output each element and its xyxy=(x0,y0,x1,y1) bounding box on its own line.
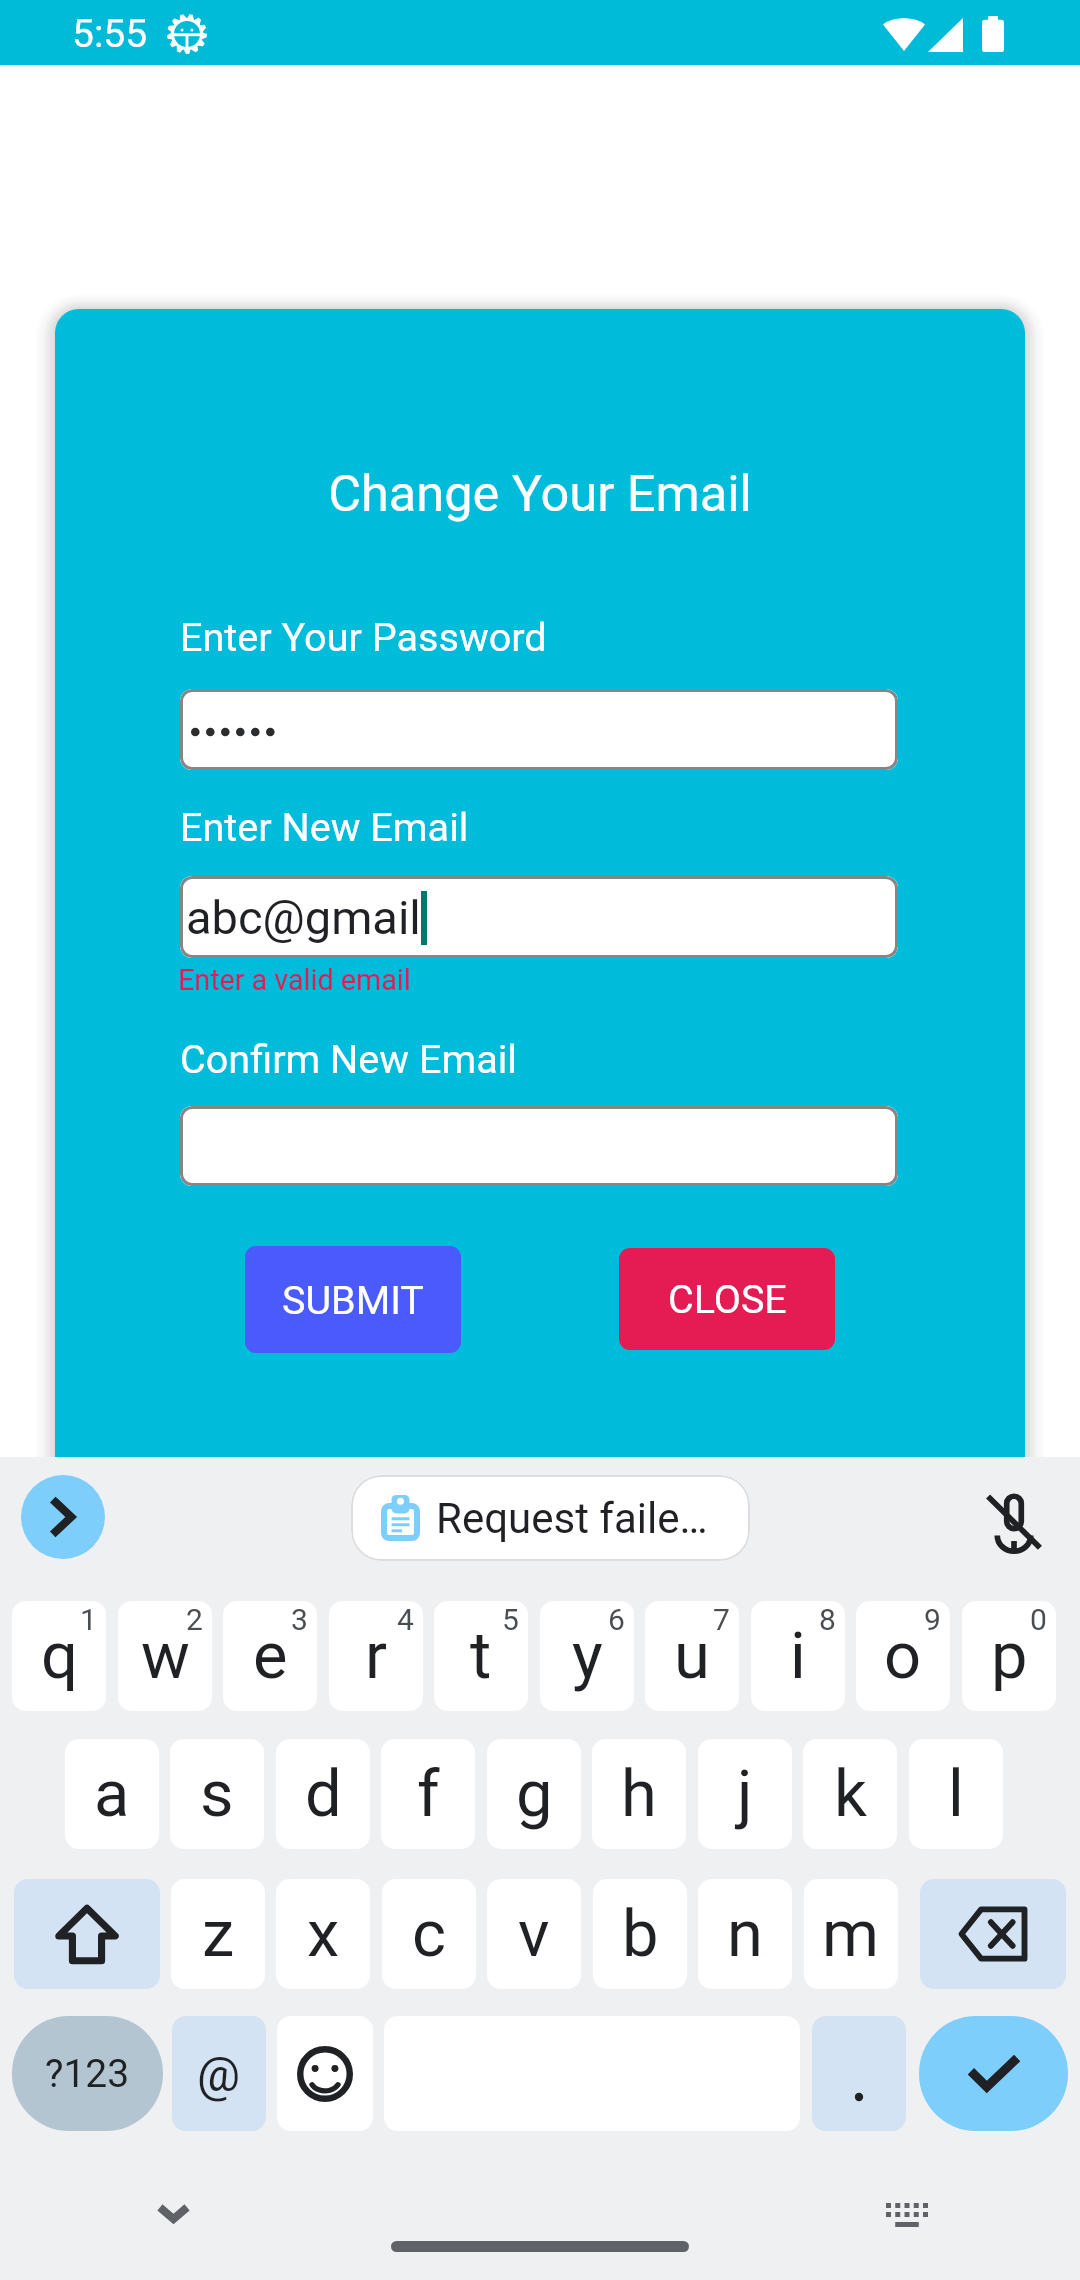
button[interactable]: x xyxy=(276,1879,370,1989)
button[interactable]: o xyxy=(856,1601,950,1711)
button[interactable]: Symbols xyxy=(12,2016,163,2131)
staticText: Confirm New Email xyxy=(180,1036,517,1082)
button[interactable]: s xyxy=(170,1739,264,1849)
button[interactable]: Backspace xyxy=(920,1879,1066,1989)
staticText: Enter Your Password xyxy=(180,614,547,660)
staticText: f xyxy=(417,1756,440,1832)
staticText: i xyxy=(790,1618,806,1694)
staticText: 2 xyxy=(186,1602,203,1637)
staticText: l xyxy=(948,1756,964,1832)
staticText: m xyxy=(822,1896,880,1972)
staticText: n xyxy=(727,1896,763,1972)
staticText: g xyxy=(516,1756,553,1832)
staticText: 9 xyxy=(924,1602,941,1637)
button[interactable]: d xyxy=(276,1739,370,1849)
staticText: 0 xyxy=(1030,1602,1047,1637)
staticText: u xyxy=(674,1618,710,1694)
button[interactable]: m xyxy=(804,1879,898,1989)
button[interactable]: Enter xyxy=(919,2016,1068,2131)
button[interactable]: f xyxy=(381,1739,475,1849)
staticText: d xyxy=(305,1756,342,1832)
button[interactable]: r xyxy=(329,1601,423,1711)
staticText: 7 xyxy=(713,1602,730,1637)
button[interactable]: Voice input off xyxy=(974,1482,1054,1562)
staticText: ?123 xyxy=(45,2051,130,2097)
staticText: 4 xyxy=(397,1602,414,1637)
button[interactable]: abc@gmail xyxy=(180,876,898,958)
staticText: h xyxy=(621,1756,657,1832)
button[interactable]: q xyxy=(12,1601,106,1711)
button[interactable]: n xyxy=(698,1879,792,1989)
button[interactable]: Shift xyxy=(14,1879,160,1989)
button[interactable]: Change keyboard xyxy=(867,2175,947,2255)
staticText: v xyxy=(518,1896,550,1972)
button[interactable]: Request faile… xyxy=(351,1475,750,1561)
staticText: w xyxy=(141,1618,190,1694)
button[interactable]: Period xyxy=(812,2016,906,2131)
button[interactable]: y xyxy=(540,1601,634,1711)
staticText: o xyxy=(884,1618,922,1694)
staticText: SUBMIT xyxy=(282,1277,424,1323)
button[interactable]: k xyxy=(803,1739,897,1849)
button[interactable]: z xyxy=(171,1879,265,1989)
staticText: a xyxy=(94,1756,130,1832)
button[interactable]: t xyxy=(434,1601,528,1711)
staticText: 5:55 xyxy=(72,11,148,57)
button[interactable]: At sign xyxy=(172,2016,266,2131)
staticText: z xyxy=(202,1896,235,1972)
button[interactable]: w xyxy=(118,1601,212,1711)
staticText: Request faile… xyxy=(436,1494,708,1543)
button[interactable]: j xyxy=(698,1739,792,1849)
button[interactable]: c xyxy=(382,1879,476,1989)
staticText: t xyxy=(470,1618,492,1694)
staticText: Enter New Email xyxy=(180,804,469,850)
staticText: 6 xyxy=(608,1602,625,1637)
staticText: q xyxy=(41,1618,78,1694)
button[interactable]: h xyxy=(592,1739,686,1849)
staticText: p xyxy=(991,1618,1028,1694)
button[interactable] xyxy=(180,689,898,770)
staticText: c xyxy=(412,1896,447,1972)
staticText: abc@gmail xyxy=(186,890,421,945)
button[interactable]: b xyxy=(593,1879,687,1989)
button[interactable]: l xyxy=(909,1739,1003,1849)
staticText: Change Your Email xyxy=(55,464,1025,523)
staticText: y xyxy=(572,1618,603,1694)
button[interactable]: CLOSE xyxy=(619,1248,835,1350)
staticText: Enter a valid email xyxy=(178,963,411,997)
staticText: s xyxy=(200,1756,234,1832)
button[interactable]: g xyxy=(487,1739,581,1849)
staticText: @ xyxy=(197,2046,241,2102)
button[interactable]: Emoji xyxy=(277,2016,373,2131)
staticText: e xyxy=(253,1618,288,1694)
button[interactable]: e xyxy=(223,1601,317,1711)
button[interactable]: Hide keyboard xyxy=(133,2174,213,2254)
button[interactable]: u xyxy=(645,1601,739,1711)
staticText: x xyxy=(307,1896,340,1972)
button[interactable]: SUBMIT xyxy=(245,1246,461,1353)
button[interactable]: i xyxy=(751,1601,845,1711)
staticText: 8 xyxy=(819,1602,836,1637)
staticText: 3 xyxy=(291,1602,308,1637)
button[interactable]: a xyxy=(65,1739,159,1849)
button[interactable]: p xyxy=(962,1601,1056,1711)
staticText: r xyxy=(365,1618,388,1694)
staticText: j xyxy=(737,1756,753,1832)
button[interactable]: v xyxy=(487,1879,581,1989)
staticText: 5 xyxy=(502,1602,519,1637)
staticText: k xyxy=(834,1756,867,1832)
button[interactable]: Expand toolbar xyxy=(21,1475,105,1559)
staticText: CLOSE xyxy=(668,1276,787,1322)
button[interactable] xyxy=(180,1106,898,1186)
staticText: 1 xyxy=(80,1602,97,1637)
staticText: b xyxy=(622,1896,659,1972)
